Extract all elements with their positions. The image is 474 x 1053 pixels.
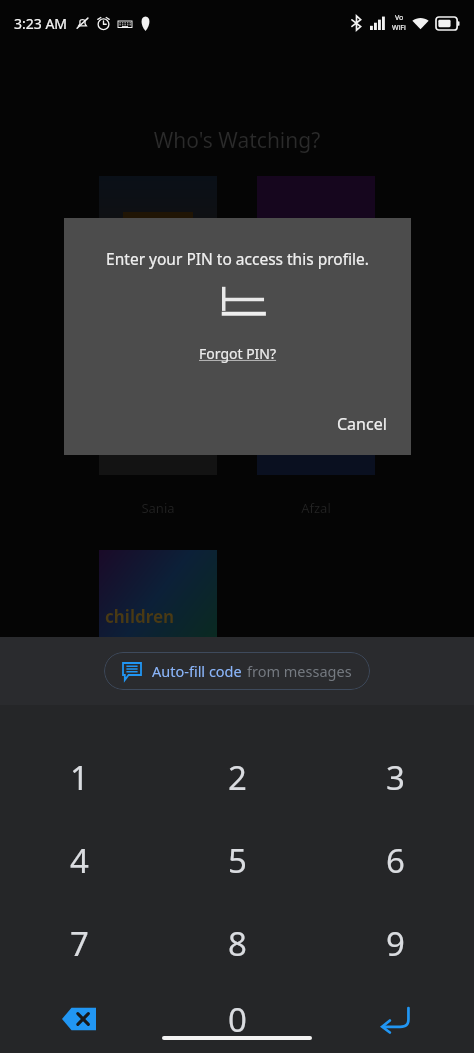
staticText: 0 — [228, 997, 247, 1042]
staticText: Sania — [99, 499, 217, 517]
staticText: 4 — [70, 838, 89, 883]
staticText: Auto-fill code — [152, 661, 242, 681]
button[interactable]: 1 — [0, 736, 158, 819]
staticText: Afzal — [257, 499, 375, 517]
button[interactable]: Cancel — [327, 407, 397, 441]
button[interactable]: 9 — [316, 902, 474, 985]
button[interactable]: PIN input field — [207, 285, 269, 321]
button[interactable]: 0 — [158, 985, 316, 1053]
staticText: 8 — [228, 921, 247, 966]
button[interactable]: Forgot PIN? — [199, 344, 277, 363]
staticText: WiFi — [392, 23, 406, 33]
staticText: 3 — [386, 755, 405, 800]
staticText: 5 — [228, 838, 247, 883]
button[interactable]: 3 — [316, 736, 474, 819]
button[interactable]: 2 — [158, 736, 316, 819]
button[interactable]: 5 — [158, 819, 316, 902]
staticText: children — [105, 605, 175, 628]
button[interactable]: Enter — [316, 985, 474, 1053]
button[interactable]: Backspace — [0, 985, 158, 1053]
staticText: Enter your PIN to access this profile. — [106, 248, 369, 269]
button[interactable]: Auto-fill code — [104, 652, 370, 690]
staticText: 3:23 AM — [14, 14, 68, 33]
button[interactable]: 7 — [0, 902, 158, 985]
staticText: 1 — [70, 755, 89, 800]
staticText: Who's Watching? — [0, 126, 474, 155]
staticText: 2 — [228, 755, 247, 800]
staticText: Vo — [395, 13, 404, 23]
staticText: 6 — [386, 838, 405, 883]
staticText: Cancel — [337, 413, 387, 435]
staticText: from messages — [247, 661, 352, 681]
button[interactable]: 6 — [316, 819, 474, 902]
button[interactable]: 8 — [158, 902, 316, 985]
staticText: 7 — [70, 921, 89, 966]
staticText: Forgot PIN? — [199, 344, 277, 363]
staticText: 9 — [386, 921, 405, 966]
button[interactable]: 4 — [0, 819, 158, 902]
